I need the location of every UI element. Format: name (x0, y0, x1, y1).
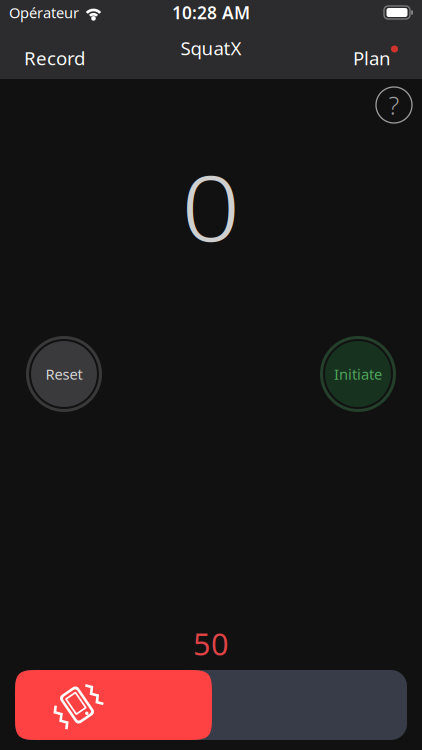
staticText: SquatX (180, 36, 241, 60)
staticText: 0 (185, 146, 237, 266)
button[interactable]: Record (24, 46, 85, 70)
button[interactable]: Reset (26, 336, 102, 412)
staticText: Opérateur (9, 3, 79, 22)
staticText: 50 (193, 623, 229, 664)
staticText: Reset (45, 364, 82, 384)
staticText: Plan (353, 46, 391, 70)
staticText: Record (24, 46, 85, 70)
button[interactable]: Plan (353, 46, 398, 70)
button[interactable]: Help (376, 87, 412, 123)
button[interactable]: Vibration (15, 670, 212, 740)
staticText: Initiate (334, 364, 382, 384)
staticText: 10:28 AM (172, 1, 250, 24)
button[interactable]: Initiate (320, 336, 396, 412)
staticText: ? (388, 88, 399, 122)
